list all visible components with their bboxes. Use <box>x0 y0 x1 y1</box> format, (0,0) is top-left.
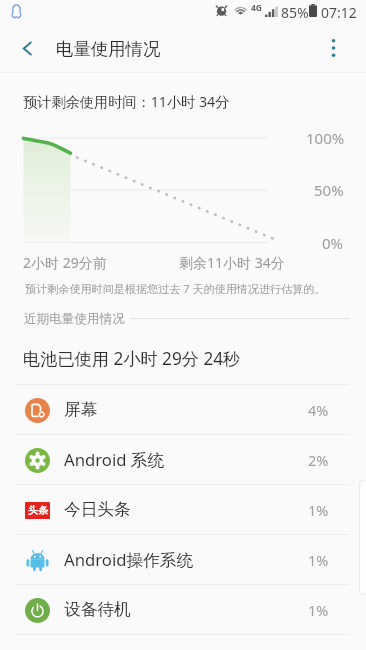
staticText: 07:12 <box>321 3 357 22</box>
staticText: 今日头条 <box>64 499 308 520</box>
staticText: 屏幕 <box>64 399 308 420</box>
staticText: 头条 <box>28 504 48 517</box>
staticText: Android 系统 <box>64 448 308 471</box>
staticText: 85% <box>281 3 309 22</box>
staticText: 电量使用情况 <box>56 38 161 60</box>
button[interactable]: 头条 <box>0 485 366 534</box>
staticText: 剩余11小时 34分 <box>179 253 285 272</box>
staticText: 1% <box>308 600 329 620</box>
button[interactable]: 屏幕 <box>0 385 366 434</box>
staticText: 近期电量使用情况 <box>24 311 125 327</box>
staticText: 2小时 29分前 <box>23 253 107 272</box>
button[interactable]: Android 系统 <box>0 435 366 484</box>
staticText: 0% <box>322 233 344 253</box>
staticText: 4G <box>251 2 263 14</box>
staticText: 100% <box>306 128 345 148</box>
button[interactable]: Back <box>10 31 44 65</box>
staticText: 50% <box>314 180 344 200</box>
staticText: 1% <box>308 500 329 520</box>
staticText: 设备待机 <box>64 599 308 620</box>
button[interactable]: More options <box>316 31 350 65</box>
staticText: 4% <box>308 400 329 420</box>
staticText: 预计剩余使用时间是根据您过去 7 天的使用情况进行估算的。 <box>25 281 326 296</box>
staticText: 预计剩余使用时间：11小时 34分 <box>23 92 230 111</box>
staticText: 2% <box>308 450 329 470</box>
staticText: 电池已使用 2小时 29分 24秒 <box>23 347 241 370</box>
button[interactable]: Android操作系统 <box>0 535 366 584</box>
button[interactable]: 设备待机 <box>0 585 366 634</box>
staticText: Android操作系统 <box>64 548 308 571</box>
staticText: 1% <box>308 550 329 570</box>
